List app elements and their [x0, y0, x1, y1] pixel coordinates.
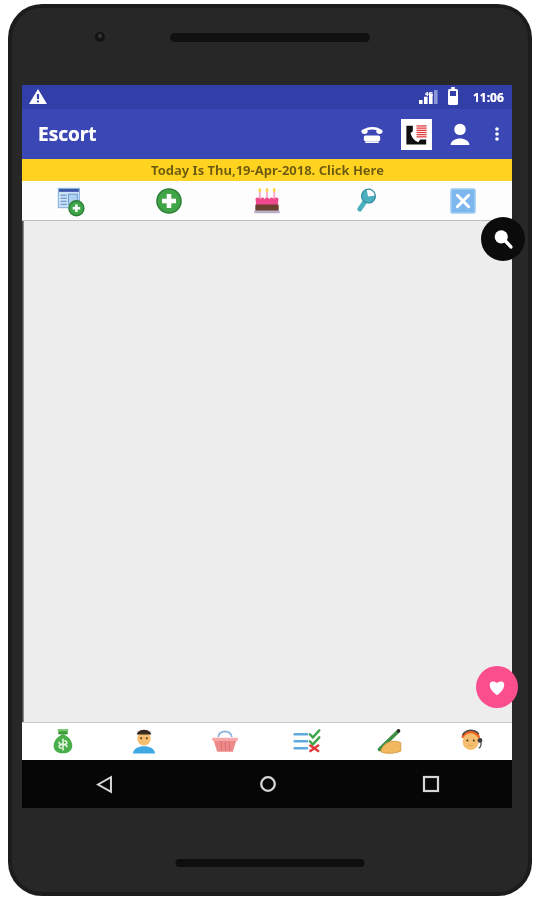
button[interactable]: Search [481, 217, 525, 261]
staticText: 11:06 [473, 89, 504, 105]
button[interactable]: Close [414, 181, 512, 221]
button[interactable]: Contacts [394, 112, 438, 156]
button[interactable]: More options [482, 112, 512, 156]
button[interactable]: Recents [411, 764, 451, 804]
button[interactable]: Tasks [266, 722, 348, 760]
button[interactable]: Birthdays [218, 181, 316, 221]
button[interactable]: Home [248, 764, 288, 804]
staticText: 4G [425, 90, 433, 98]
button[interactable]: Add [120, 181, 218, 221]
button[interactable]: New record [22, 181, 120, 221]
button[interactable]: Support [430, 722, 512, 760]
button[interactable]: Call [350, 112, 394, 156]
button[interactable]: Back [84, 764, 124, 804]
button[interactable]: Profile [438, 112, 482, 156]
staticText: Escort [38, 121, 350, 147]
button[interactable]: Orders [184, 722, 266, 760]
button[interactable]: Customers [103, 722, 184, 760]
button[interactable]: Favourites [476, 666, 518, 708]
button[interactable]: Settings [316, 181, 414, 221]
button[interactable]: Today Is Thu,19-Apr-2018. Click Here [22, 159, 512, 181]
button[interactable]: Accounts [22, 722, 103, 760]
button[interactable]: Notes [348, 722, 430, 760]
staticText: Today Is Thu,19-Apr-2018. Click Here [151, 161, 384, 179]
